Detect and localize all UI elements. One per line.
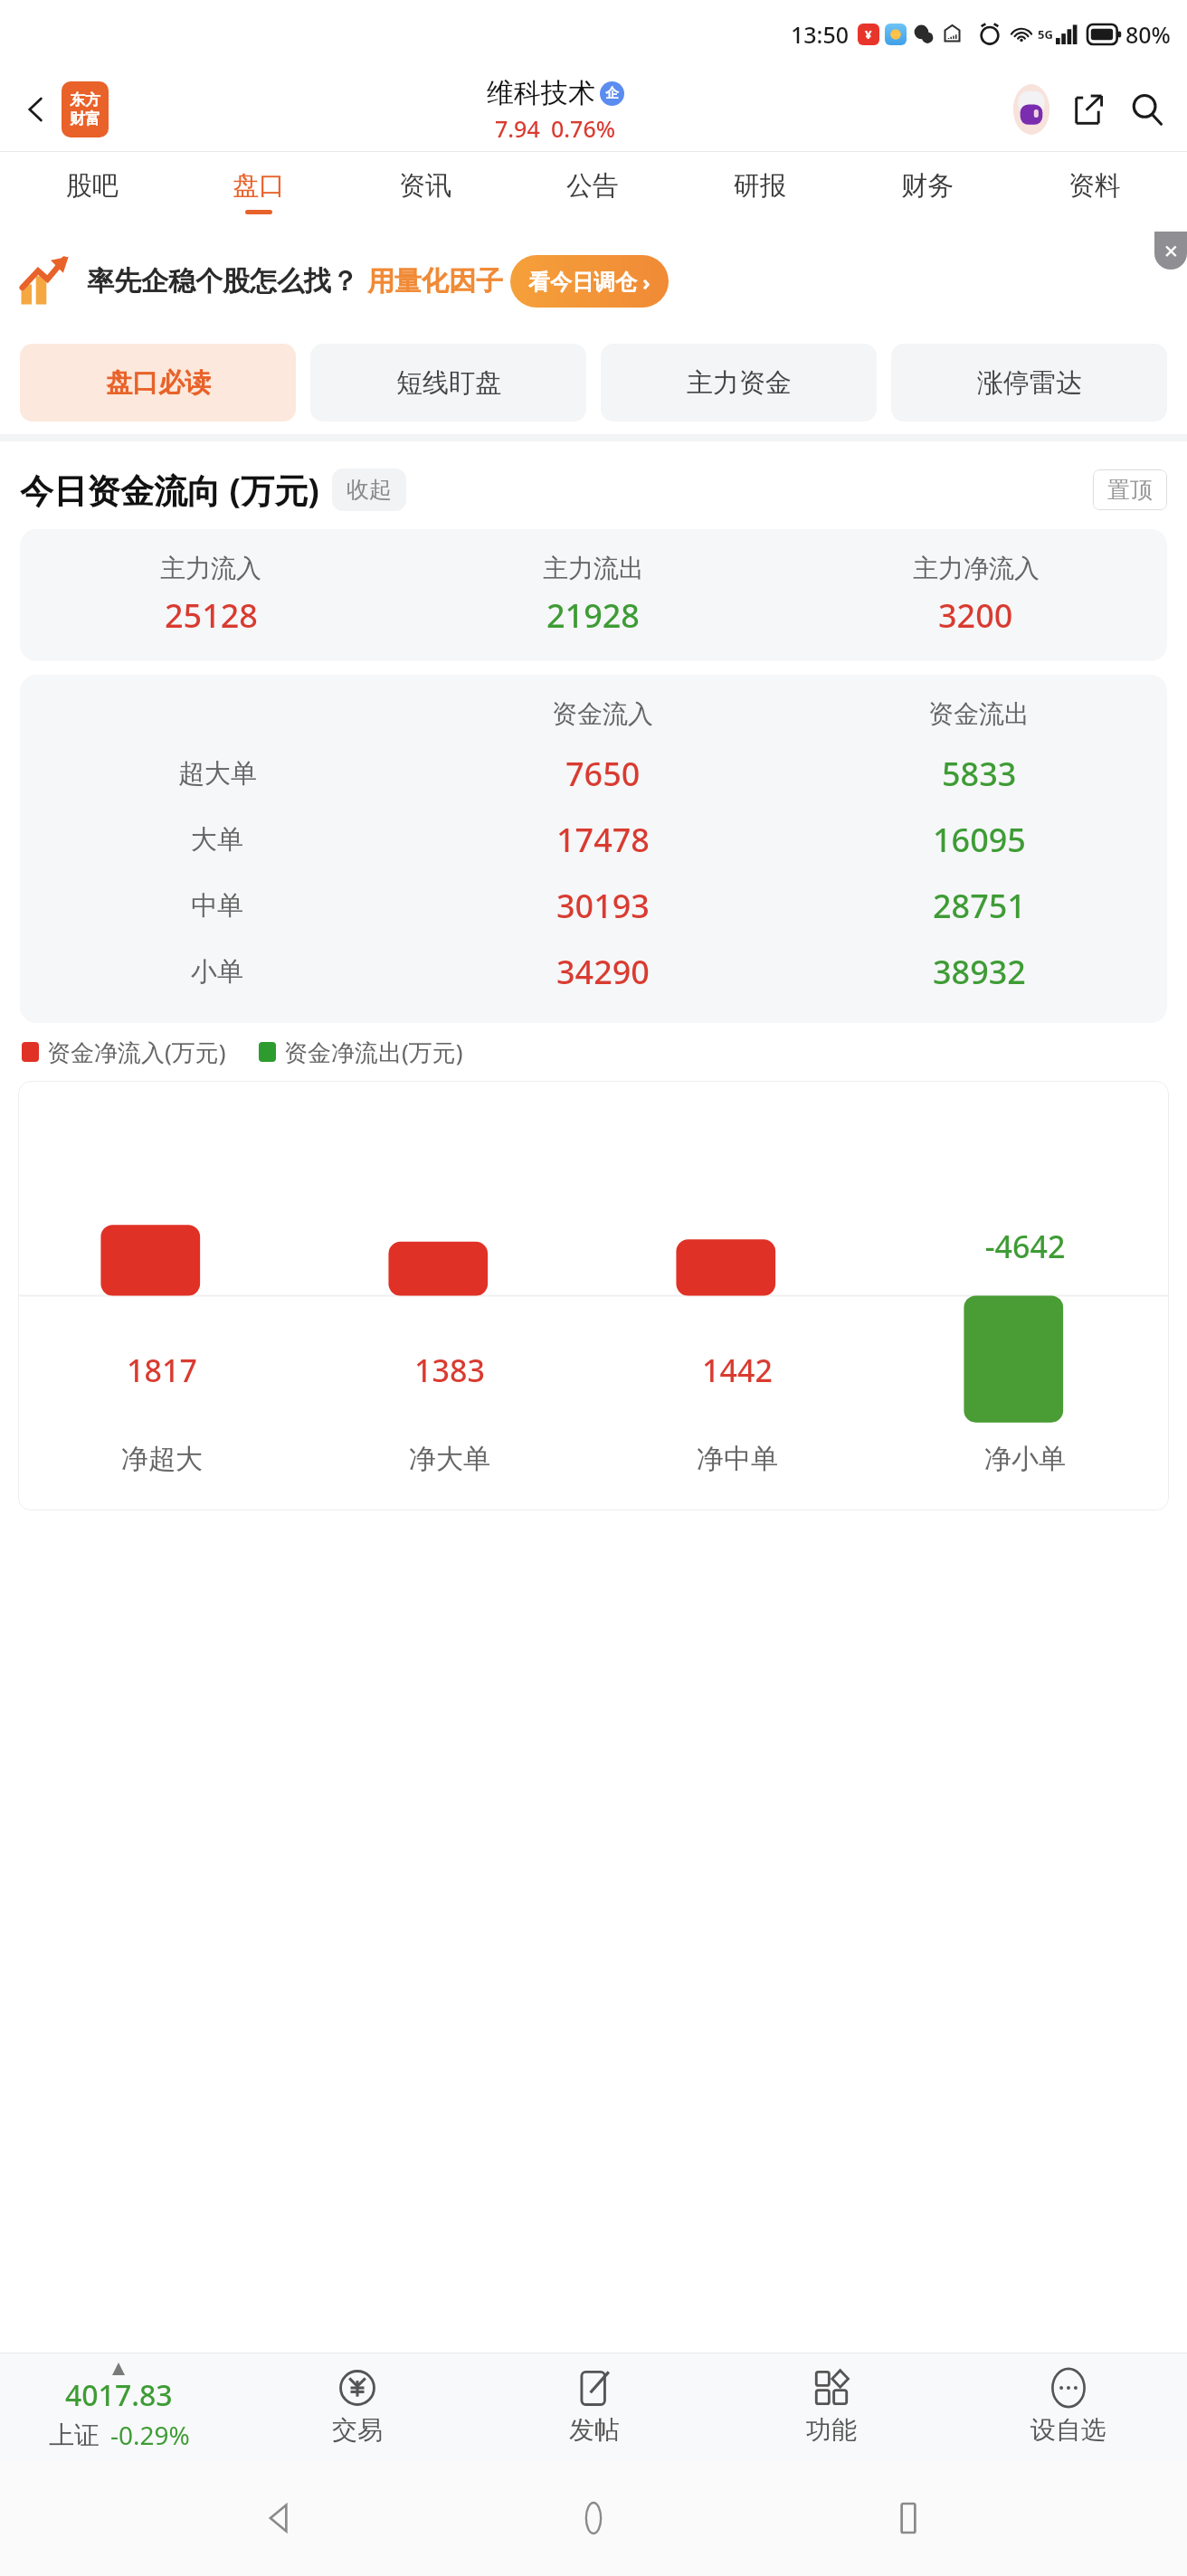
button[interactable]: 关闭广告 <box>1154 232 1187 270</box>
button[interactable]: 主页 <box>557 2482 630 2554</box>
staticText: 1817 <box>18 1350 306 1391</box>
staticText: 净中单 <box>593 1442 881 1476</box>
staticText: 0.76% <box>551 113 616 144</box>
staticText: 资讯 <box>399 169 451 203</box>
staticText: 17478 <box>556 818 650 862</box>
staticText: ¥ <box>865 26 872 43</box>
staticText: 资金流出 <box>928 698 1030 730</box>
staticText: 财务 <box>901 169 954 203</box>
button[interactable]: 小单 <box>20 950 1167 994</box>
staticText: 13:50 <box>791 19 850 50</box>
staticText: 3200 <box>938 593 1013 638</box>
button[interactable]: 功能 <box>713 2353 950 2460</box>
staticText: 资料 <box>1068 169 1121 203</box>
staticText: 主力资金 <box>687 366 792 400</box>
staticText: 率先企稳个股怎么找？ <box>87 264 358 298</box>
staticText: 净超大 <box>18 1442 306 1476</box>
staticText: 维科技术 <box>487 76 595 110</box>
staticText: 短线盯盘 <box>396 366 501 400</box>
staticText: 80% <box>1125 19 1171 50</box>
staticText: 置顶 <box>1107 476 1153 504</box>
staticText: 公告 <box>566 169 619 203</box>
button[interactable]: 返回 <box>11 84 62 135</box>
staticText: 收起 <box>347 476 392 504</box>
button[interactable]: 短线盯盘 <box>310 344 586 421</box>
button[interactable]: 涨停雷达 <box>891 344 1167 421</box>
button[interactable]: 智能助手 <box>1002 80 1060 138</box>
button[interactable]: 最近任务 <box>872 2482 945 2554</box>
button[interactable]: 东方财富 <box>62 81 109 137</box>
button[interactable]: 股吧 <box>9 152 176 232</box>
staticText: -4642 <box>881 1226 1169 1267</box>
staticText: 5G <box>1038 26 1053 43</box>
button[interactable]: 中单 <box>20 884 1167 928</box>
button[interactable]: 收起 <box>332 469 406 511</box>
staticText: -0.29% <box>110 2418 190 2452</box>
staticText: 净大单 <box>306 1442 593 1476</box>
staticText: 38932 <box>933 950 1026 994</box>
button[interactable]: 4017.83 <box>0 2353 238 2460</box>
button[interactable]: 资讯 <box>342 152 508 232</box>
staticText: 股吧 <box>66 169 119 203</box>
button[interactable]: 搜索 <box>1118 80 1176 138</box>
button[interactable]: 公告 <box>508 152 676 232</box>
staticText: 4017.83 <box>65 2375 173 2415</box>
button[interactable]: 分享 <box>1060 80 1118 138</box>
staticText: 7650 <box>565 752 641 796</box>
staticText: 企 <box>605 85 619 102</box>
staticText: 小单 <box>191 955 243 989</box>
staticText: 28751 <box>933 884 1026 928</box>
staticText: 资金净流入(万元) <box>47 1036 226 1068</box>
staticText: 1383 <box>306 1350 593 1391</box>
staticText: ✕ <box>1163 241 1179 261</box>
staticText: 1442 <box>593 1350 881 1391</box>
staticText: 设自选 <box>1030 2414 1106 2446</box>
staticText: 超大单 <box>178 757 257 791</box>
staticText: 资金净流出(万元) <box>284 1036 463 1068</box>
button[interactable]: 返回 <box>242 2482 315 2554</box>
staticText: 用量化因子 <box>367 264 503 298</box>
button[interactable]: 资料 <box>1011 152 1178 232</box>
staticText: 30193 <box>556 884 650 928</box>
staticText: 发帖 <box>569 2414 620 2446</box>
staticText: 盘口必读 <box>106 366 211 400</box>
button[interactable]: 超大单 <box>20 752 1167 796</box>
button[interactable]: 交易 <box>238 2353 476 2460</box>
staticText: 交易 <box>332 2414 383 2446</box>
button[interactable]: 主力流入 <box>20 529 1167 661</box>
staticText: 研报 <box>734 169 786 203</box>
button[interactable]: 置顶 <box>1093 469 1167 510</box>
staticText: 5833 <box>942 752 1017 796</box>
staticText: 中单 <box>191 889 243 923</box>
button[interactable]: 盘口 <box>176 152 342 232</box>
staticText: 主力流出 <box>543 553 644 584</box>
staticText: 净小单 <box>881 1442 1169 1476</box>
staticText: 东方 <box>70 90 100 109</box>
button[interactable]: 盘口必读 <box>20 344 296 421</box>
staticText: 功能 <box>806 2414 857 2446</box>
button[interactable]: 设自选 <box>950 2353 1187 2460</box>
staticText: 今日资金流向 (万元) <box>20 467 319 513</box>
staticText: 25128 <box>165 593 258 638</box>
staticText: 大单 <box>191 823 243 857</box>
button[interactable]: 发帖 <box>476 2353 713 2460</box>
button[interactable]: 主力资金 <box>601 344 877 421</box>
staticText: 资金流入 <box>552 698 653 730</box>
staticText: 主力净流入 <box>913 553 1040 584</box>
button[interactable]: 看今日调仓 <box>510 255 669 308</box>
staticText: 21928 <box>546 593 640 638</box>
staticText: 7.94 <box>495 113 540 144</box>
staticText: 上证 <box>49 2420 100 2451</box>
button[interactable]: 大单 <box>20 818 1167 862</box>
button[interactable]: 财务 <box>843 152 1011 232</box>
staticText: 盘口 <box>233 169 285 203</box>
button[interactable]: 研报 <box>676 152 843 232</box>
staticText: › <box>642 267 650 297</box>
staticText: 涨停雷达 <box>977 366 1082 400</box>
staticText: 16095 <box>933 818 1026 862</box>
staticText: 财富 <box>70 109 100 128</box>
staticText: 主力流入 <box>160 553 261 584</box>
staticText: 34290 <box>556 950 650 994</box>
staticText: 看今日调仓 <box>528 269 637 296</box>
